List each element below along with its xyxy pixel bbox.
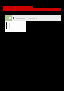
button[interactable]: App icon — [5, 15, 12, 21]
